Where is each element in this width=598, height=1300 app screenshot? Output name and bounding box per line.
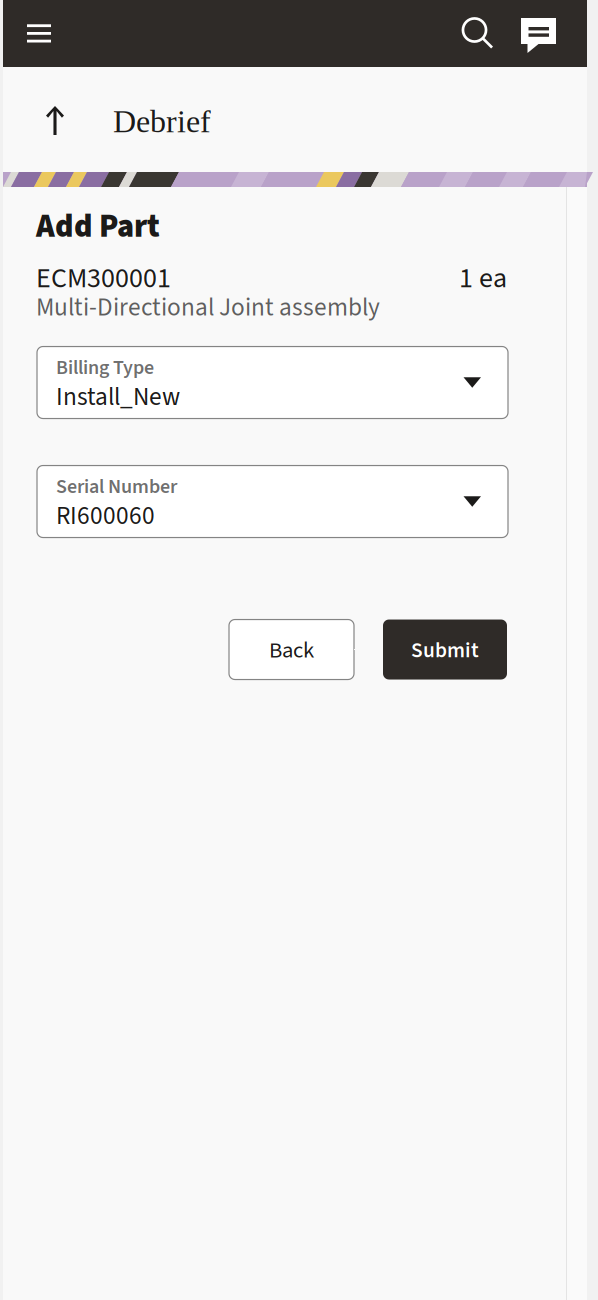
staticText: Add Part [36, 204, 160, 250]
staticText: RI600060 [56, 498, 155, 534]
button[interactable]: Search [449, 0, 507, 67]
button[interactable]: Messages [507, 0, 572, 69]
button[interactable]: Submit [383, 619, 507, 679]
staticText: Submit [411, 635, 479, 666]
button[interactable]: Back [3, 66, 107, 173]
button[interactable]: Menu [3, 0, 75, 67]
staticText: 1 ea [459, 259, 507, 298]
staticText: Install_New [56, 379, 180, 415]
button[interactable]: Back [229, 619, 354, 679]
staticText: ECM300001 [36, 259, 171, 298]
staticText: Serial Number [56, 472, 177, 501]
staticText: Debrief [113, 104, 211, 139]
staticText: Billing Type [56, 353, 154, 382]
button[interactable]: Serial Number [37, 465, 508, 537]
staticText: Back [269, 634, 314, 667]
staticText: Multi-Directional Joint assembly [36, 289, 380, 325]
button[interactable]: Billing Type [37, 346, 508, 418]
